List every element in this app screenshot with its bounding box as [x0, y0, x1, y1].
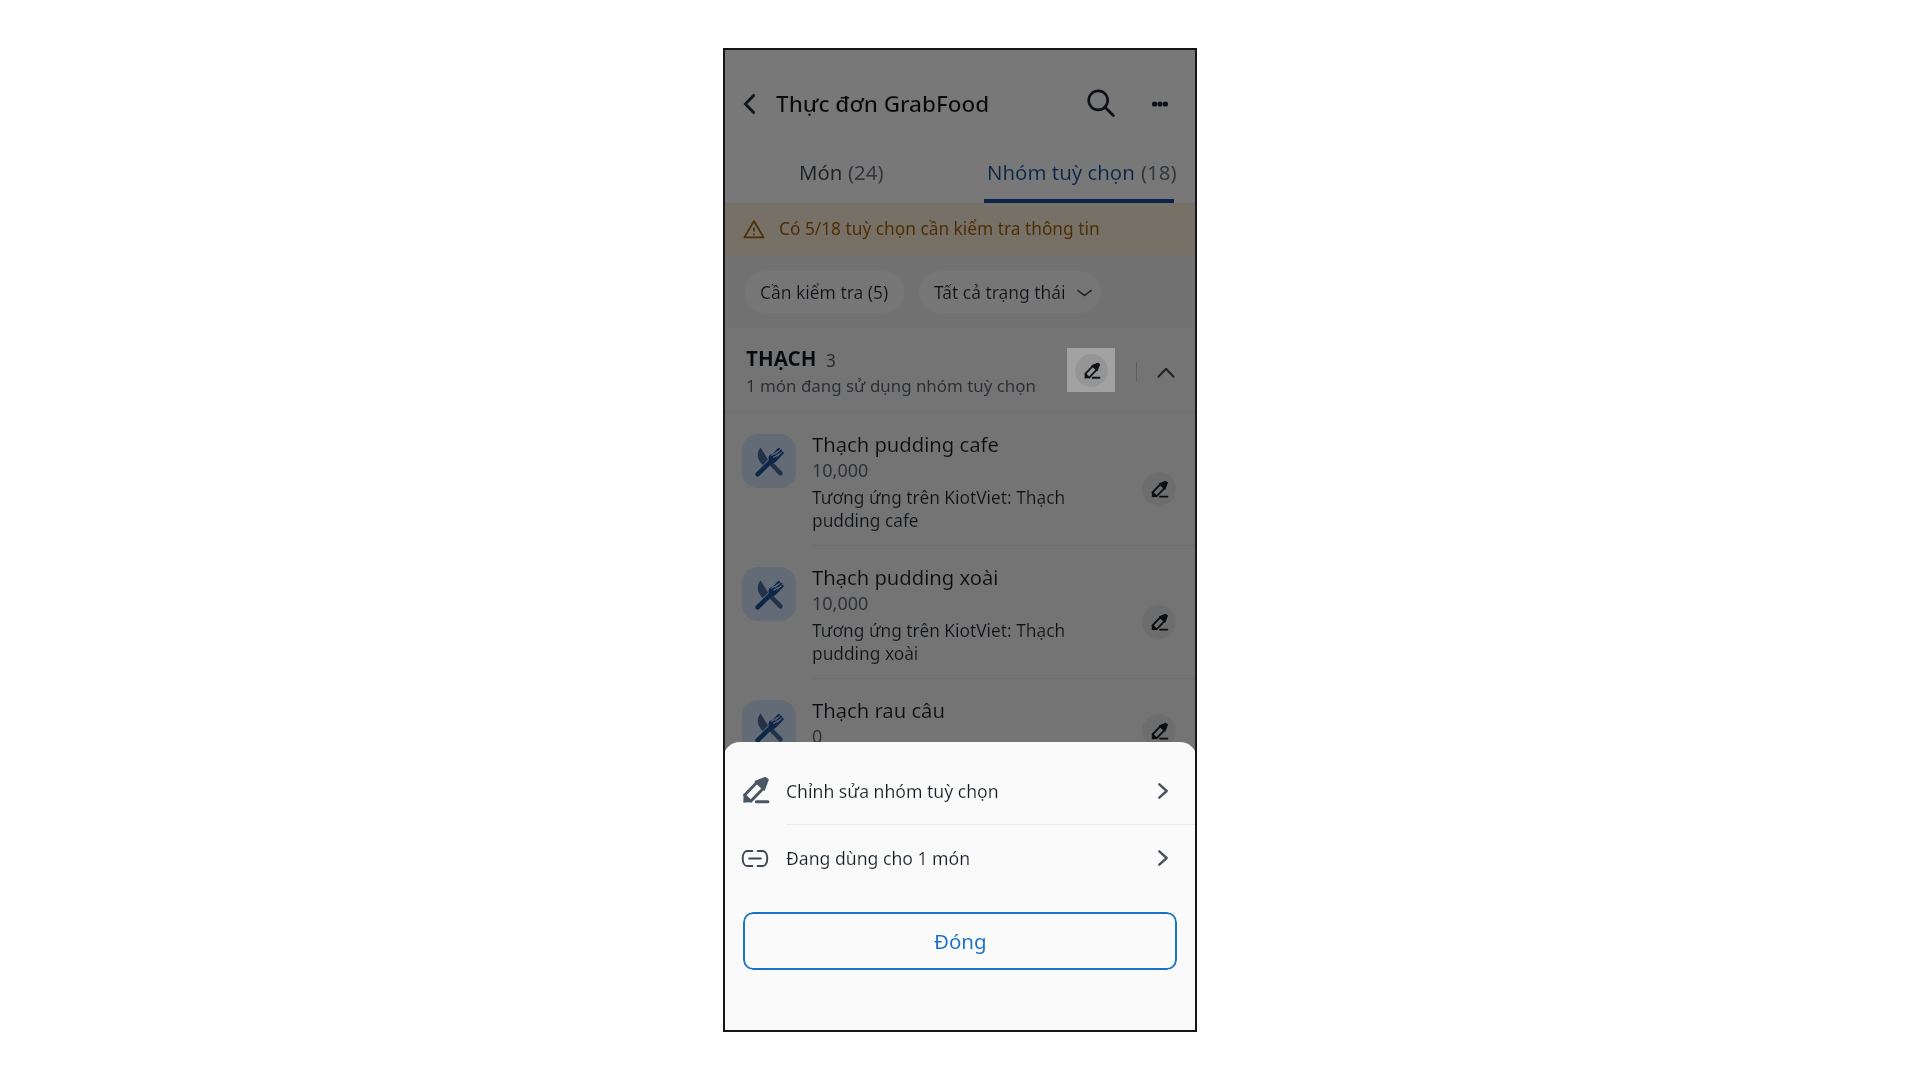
staticText: Cần kiểm tra (5): [760, 280, 889, 304]
staticText: (24): [848, 158, 884, 186]
button[interactable]: Search: [1079, 82, 1123, 126]
staticText: Có 5/18 tuỳ chọn cần kiểm tra thông tin: [779, 217, 1100, 241]
button[interactable]: Edit item: [1142, 605, 1176, 639]
button[interactable]: Thạch pudding xoài: [723, 546, 1197, 679]
button[interactable]: Thạch pudding cafe: [723, 413, 1197, 546]
staticText: Tương ứng trên KiotViet: Thạch pudding x…: [812, 619, 1066, 665]
staticText: THẠCH: [746, 344, 817, 372]
staticText: (18): [1141, 158, 1177, 186]
staticText: Thạch pudding cafe: [812, 430, 999, 458]
staticText: Thạch pudding xoài: [812, 563, 999, 591]
staticText: Thạch rau câu: [812, 696, 945, 724]
button[interactable]: Đóng: [743, 912, 1177, 970]
button[interactable]: Back: [730, 85, 768, 123]
staticText: 1 món đang sử dụng nhóm tuỳ chọn: [746, 374, 1036, 397]
button[interactable]: Edit option group: [1067, 348, 1115, 392]
button[interactable]: Đang dùng cho 1 món: [723, 825, 1197, 891]
button[interactable]: Chỉnh sửa nhóm tuỳ chọn: [723, 758, 1197, 824]
button[interactable]: Món: [723, 155, 960, 203]
button[interactable]: Thạch rau câu: [723, 679, 1197, 764]
staticText: Món: [799, 158, 848, 186]
button[interactable]: Edit item: [1142, 714, 1176, 748]
staticText: 10,000: [812, 458, 869, 483]
button[interactable]: Cần kiểm tra (5): [745, 271, 904, 313]
staticText: Tương ứng trên KiotViet: Thạch pudding c…: [812, 486, 1066, 532]
button[interactable]: Collapse group: [1150, 356, 1181, 387]
staticText: Chỉnh sửa nhóm tuỳ chọn: [786, 779, 999, 803]
staticText: Đóng: [934, 927, 987, 955]
staticText: Thực đơn GrabFood: [776, 88, 990, 119]
button[interactable]: Nhóm tuỳ chọn: [960, 155, 1197, 203]
button[interactable]: More options: [1140, 84, 1180, 124]
staticText: 3: [826, 349, 836, 372]
button[interactable]: Edit item: [1142, 472, 1176, 506]
staticText: 0: [812, 724, 823, 749]
button[interactable]: Tất cả trạng thái: [919, 271, 1101, 313]
staticText: Đang dùng cho 1 món: [786, 846, 971, 870]
staticText: Nhóm tuỳ chọn: [987, 158, 1141, 186]
staticText: 10,000: [812, 591, 869, 616]
staticText: Tất cả trạng thái: [934, 280, 1066, 304]
